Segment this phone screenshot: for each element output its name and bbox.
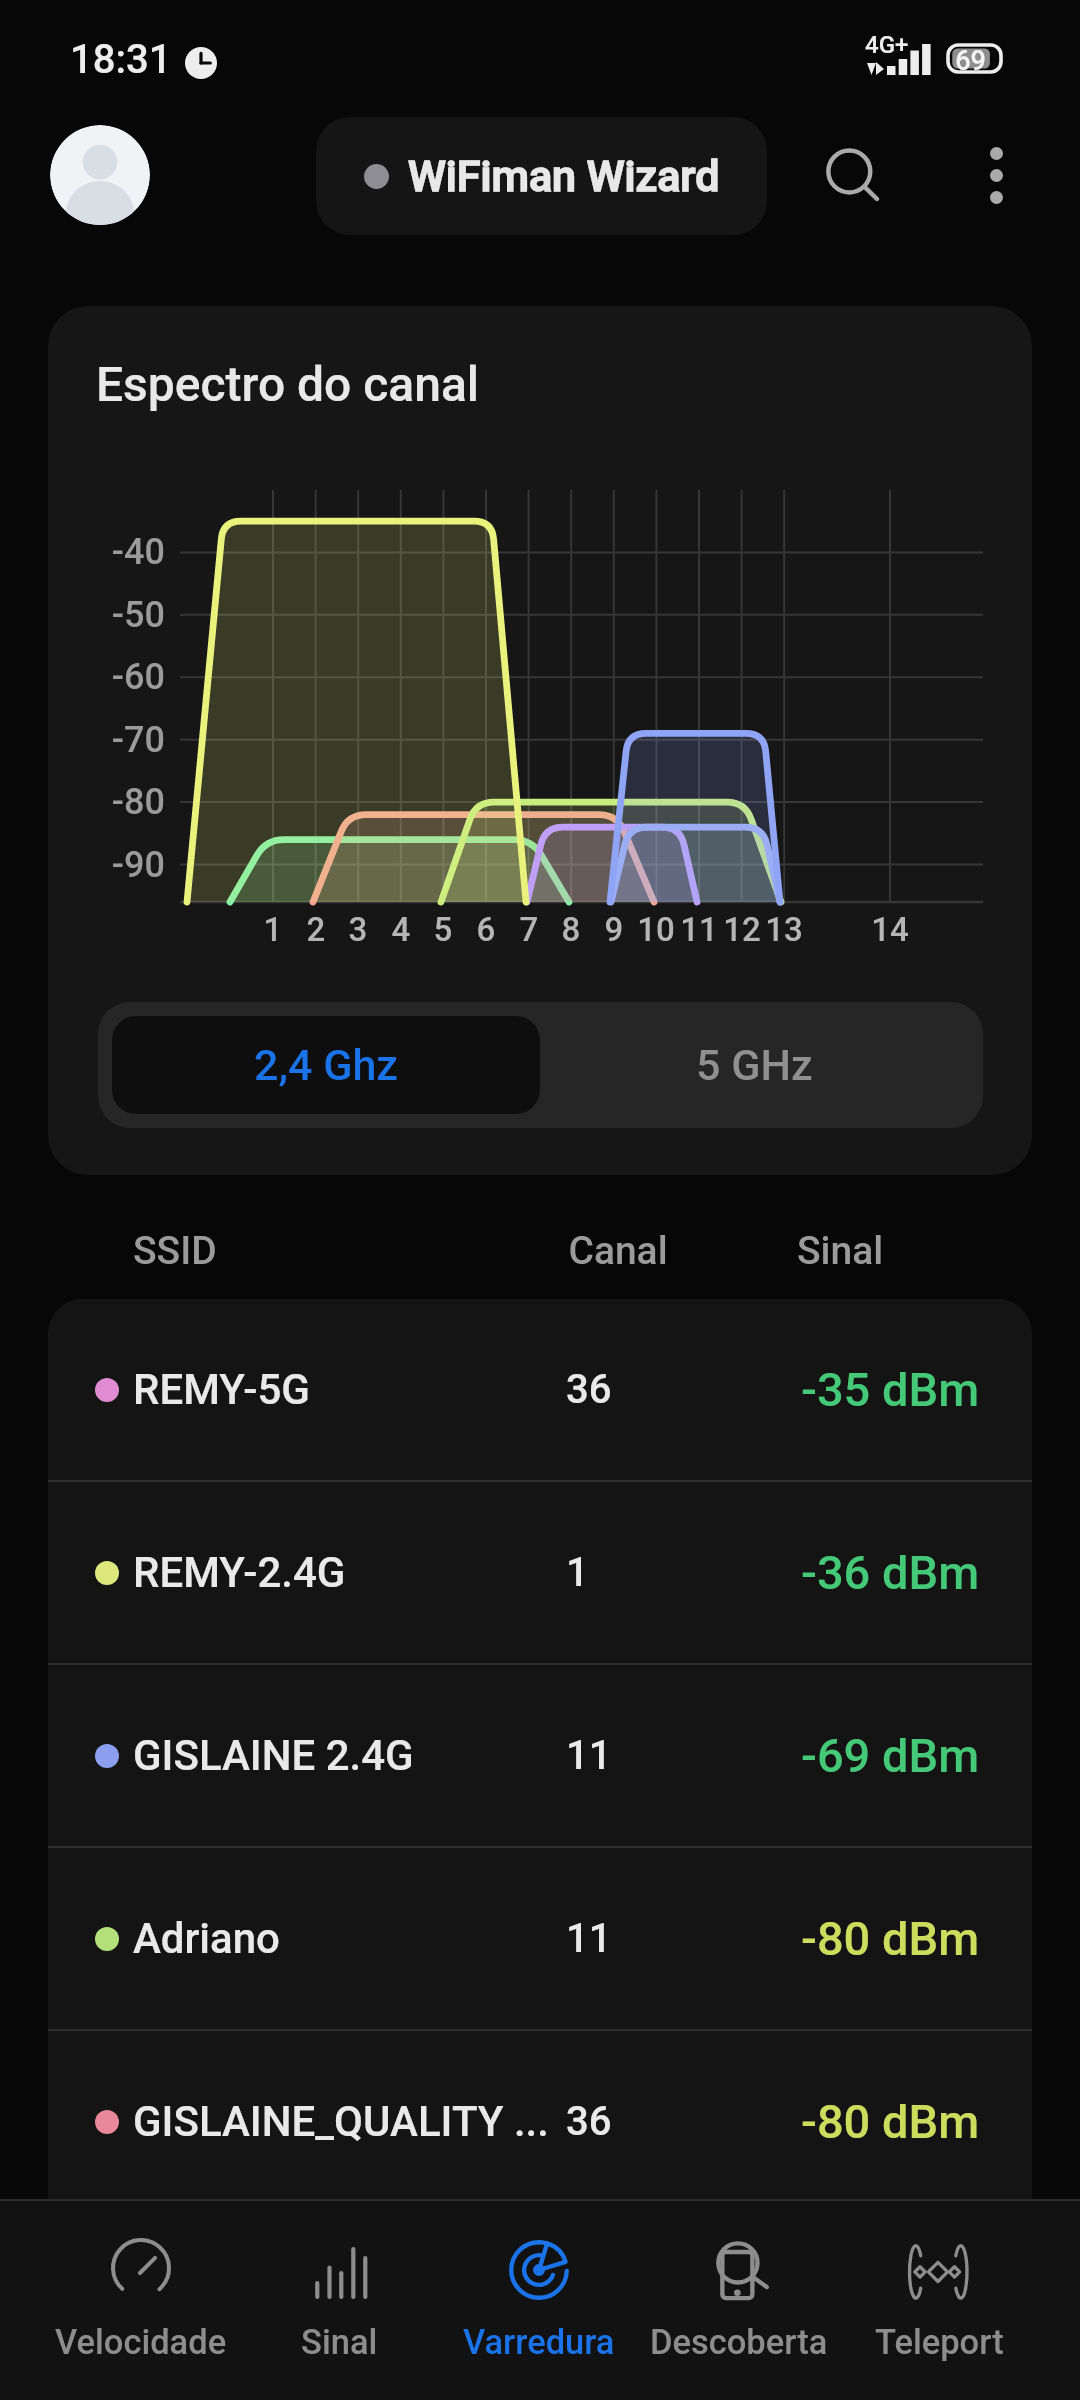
staticText: 13 [754, 910, 814, 949]
staticText: 10 [626, 910, 686, 949]
staticText: 6 [456, 910, 516, 949]
staticText: 36 [566, 1366, 612, 1413]
button[interactable]: Descoberta [639, 2201, 839, 2400]
staticText: -80 dBm [765, 2094, 1015, 2149]
staticText: 4G+ [865, 31, 909, 59]
staticText: Canal [518, 1228, 718, 1274]
staticText: 5 GHz [696, 1040, 813, 1090]
staticText: 7 [499, 910, 559, 949]
staticText: -80 dBm [765, 1911, 1015, 1966]
staticText: Teleport [875, 2322, 1004, 2362]
button[interactable]: REMY-5G [48, 1299, 1032, 1480]
staticText: Varredura [463, 2322, 615, 2362]
button[interactable]: Velocidade [41, 2201, 240, 2400]
button[interactable]: Sinal [240, 2201, 439, 2400]
staticText: 8 [541, 910, 601, 949]
staticText: Descoberta [650, 2322, 828, 2362]
staticText: 18:31 [70, 36, 172, 83]
staticText: -40 [89, 531, 165, 573]
staticText: GISLAINE_QUALITY ... [133, 2097, 549, 2146]
staticText: 4 [371, 910, 431, 949]
staticText: 1 [243, 910, 303, 949]
button[interactable]: GISLAINE 2.4G [48, 1665, 1032, 1846]
staticText: 2,4 Ghz [254, 1040, 398, 1090]
button[interactable]: GISLAINE_QUALITY ... [48, 2031, 1032, 2212]
button[interactable]: Account [50, 125, 150, 225]
staticText: 36 [566, 2098, 612, 2145]
staticText: -80 [89, 781, 165, 823]
staticText: -35 dBm [765, 1362, 1015, 1417]
staticText: 12 [712, 910, 772, 949]
staticText: 3 [328, 910, 388, 949]
staticText: 1 [566, 1549, 589, 1596]
staticText: 69 [948, 45, 993, 77]
button[interactable]: REMY-2.4G [48, 1482, 1032, 1663]
staticText: 11 [566, 1915, 612, 1962]
staticText: -90 [89, 844, 165, 886]
staticText: 11 [566, 1732, 612, 1779]
staticText: Espectro do canal [96, 356, 480, 412]
staticText: SSID [133, 1228, 217, 1274]
staticText: -60 [89, 656, 165, 698]
staticText: -36 dBm [765, 1545, 1015, 1600]
staticText: WiFiman Wizard [408, 151, 720, 201]
staticText: 14 [860, 910, 920, 949]
staticText: Sinal [301, 2322, 378, 2362]
staticText: 9 [584, 910, 644, 949]
button[interactable]: Search [797, 123, 901, 227]
button[interactable]: 2,4 Ghz [112, 1016, 540, 1114]
staticText: 5 [413, 910, 473, 949]
button[interactable]: Teleport [839, 2201, 1039, 2400]
staticText: REMY-2.4G [133, 1548, 346, 1597]
staticText: REMY-5G [133, 1365, 310, 1414]
staticText: -69 dBm [765, 1728, 1015, 1783]
button[interactable]: Varredura [439, 2201, 639, 2400]
staticText: Velocidade [55, 2322, 227, 2362]
staticText: 11 [669, 910, 729, 949]
button[interactable]: Adriano [48, 1848, 1032, 2029]
staticText: Sinal [740, 1228, 940, 1274]
staticText: 2 [286, 910, 346, 949]
button[interactable]: WiFiman Wizard [316, 117, 767, 235]
staticText: -70 [89, 719, 165, 761]
staticText: Adriano [133, 1914, 280, 1963]
button[interactable]: More options [944, 123, 1048, 227]
button[interactable]: 5 GHz [540, 1016, 969, 1114]
staticText: -50 [89, 594, 165, 636]
staticText: GISLAINE 2.4G [133, 1731, 414, 1780]
